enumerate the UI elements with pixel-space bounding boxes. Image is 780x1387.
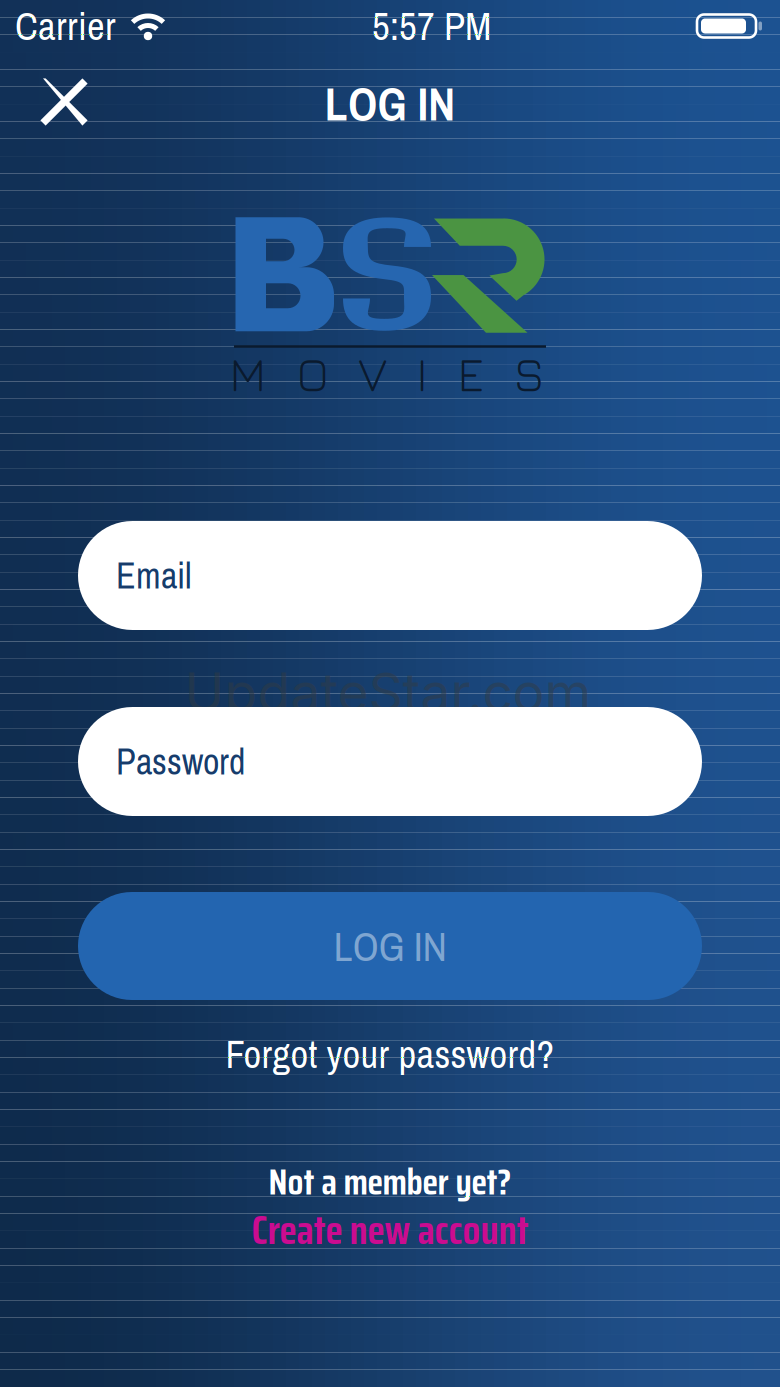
button[interactable]: Create new account (241, 1210, 538, 1250)
staticText: Email (116, 551, 192, 600)
staticText: 5:57 PM (372, 0, 491, 52)
button[interactable]: LOG IN (78, 892, 702, 1000)
staticText: Forgot your password? (225, 1028, 554, 1080)
staticText: Not a member yet? (268, 1154, 511, 1210)
button[interactable]: Forgot your password? (209, 1032, 570, 1076)
staticText: Create new account (251, 1198, 528, 1261)
staticText: LOG IN (325, 73, 455, 135)
staticText: MOVIES (229, 346, 544, 401)
staticText: Password (116, 737, 245, 786)
staticText: Carrier (15, 0, 116, 52)
staticText: LOG IN (333, 918, 446, 974)
staticText: UpdateStar.com (184, 660, 591, 724)
button[interactable]: Close (26, 64, 106, 144)
